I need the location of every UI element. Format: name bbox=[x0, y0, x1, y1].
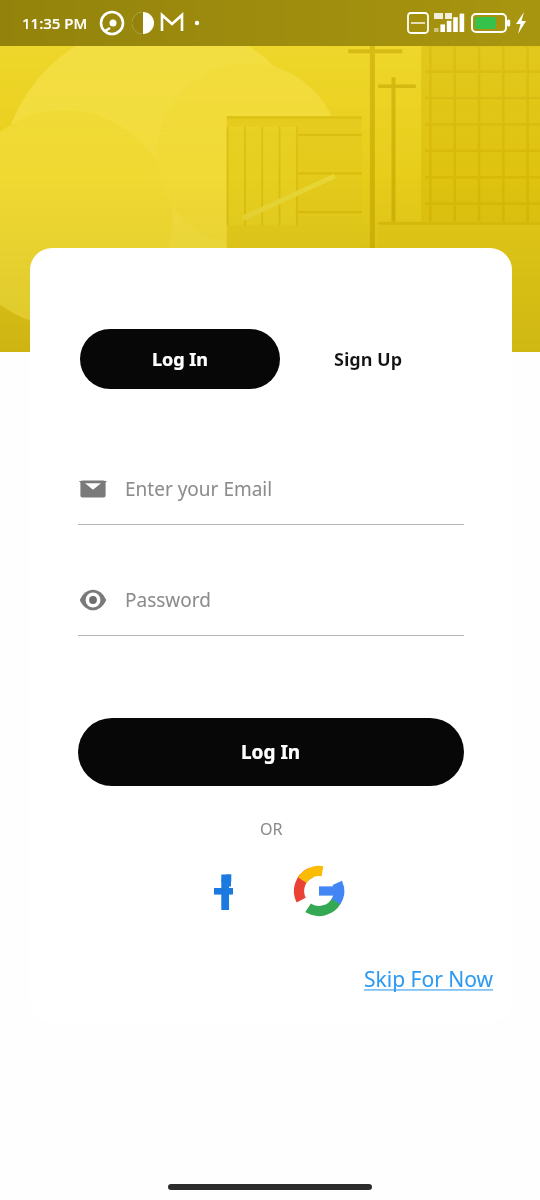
staticText: 11:35 PM bbox=[22, 13, 88, 33]
button[interactable]: Sign Up bbox=[280, 329, 456, 389]
staticText: Sign Up bbox=[334, 347, 403, 372]
staticText: Skip For Now bbox=[364, 965, 494, 994]
staticText: Log In bbox=[152, 347, 209, 372]
button[interactable]: Log In bbox=[80, 329, 280, 389]
staticText: Password bbox=[125, 587, 211, 613]
staticText: Enter your Email bbox=[125, 476, 273, 502]
button[interactable]: Skip For Now bbox=[364, 965, 494, 994]
staticText: Log In bbox=[241, 739, 301, 765]
staticText: OR bbox=[260, 818, 283, 840]
button[interactable]: Sign in with Google bbox=[291, 863, 347, 919]
button[interactable]: Sign in with Facebook bbox=[196, 863, 252, 919]
button[interactable]: Log In bbox=[78, 718, 464, 786]
